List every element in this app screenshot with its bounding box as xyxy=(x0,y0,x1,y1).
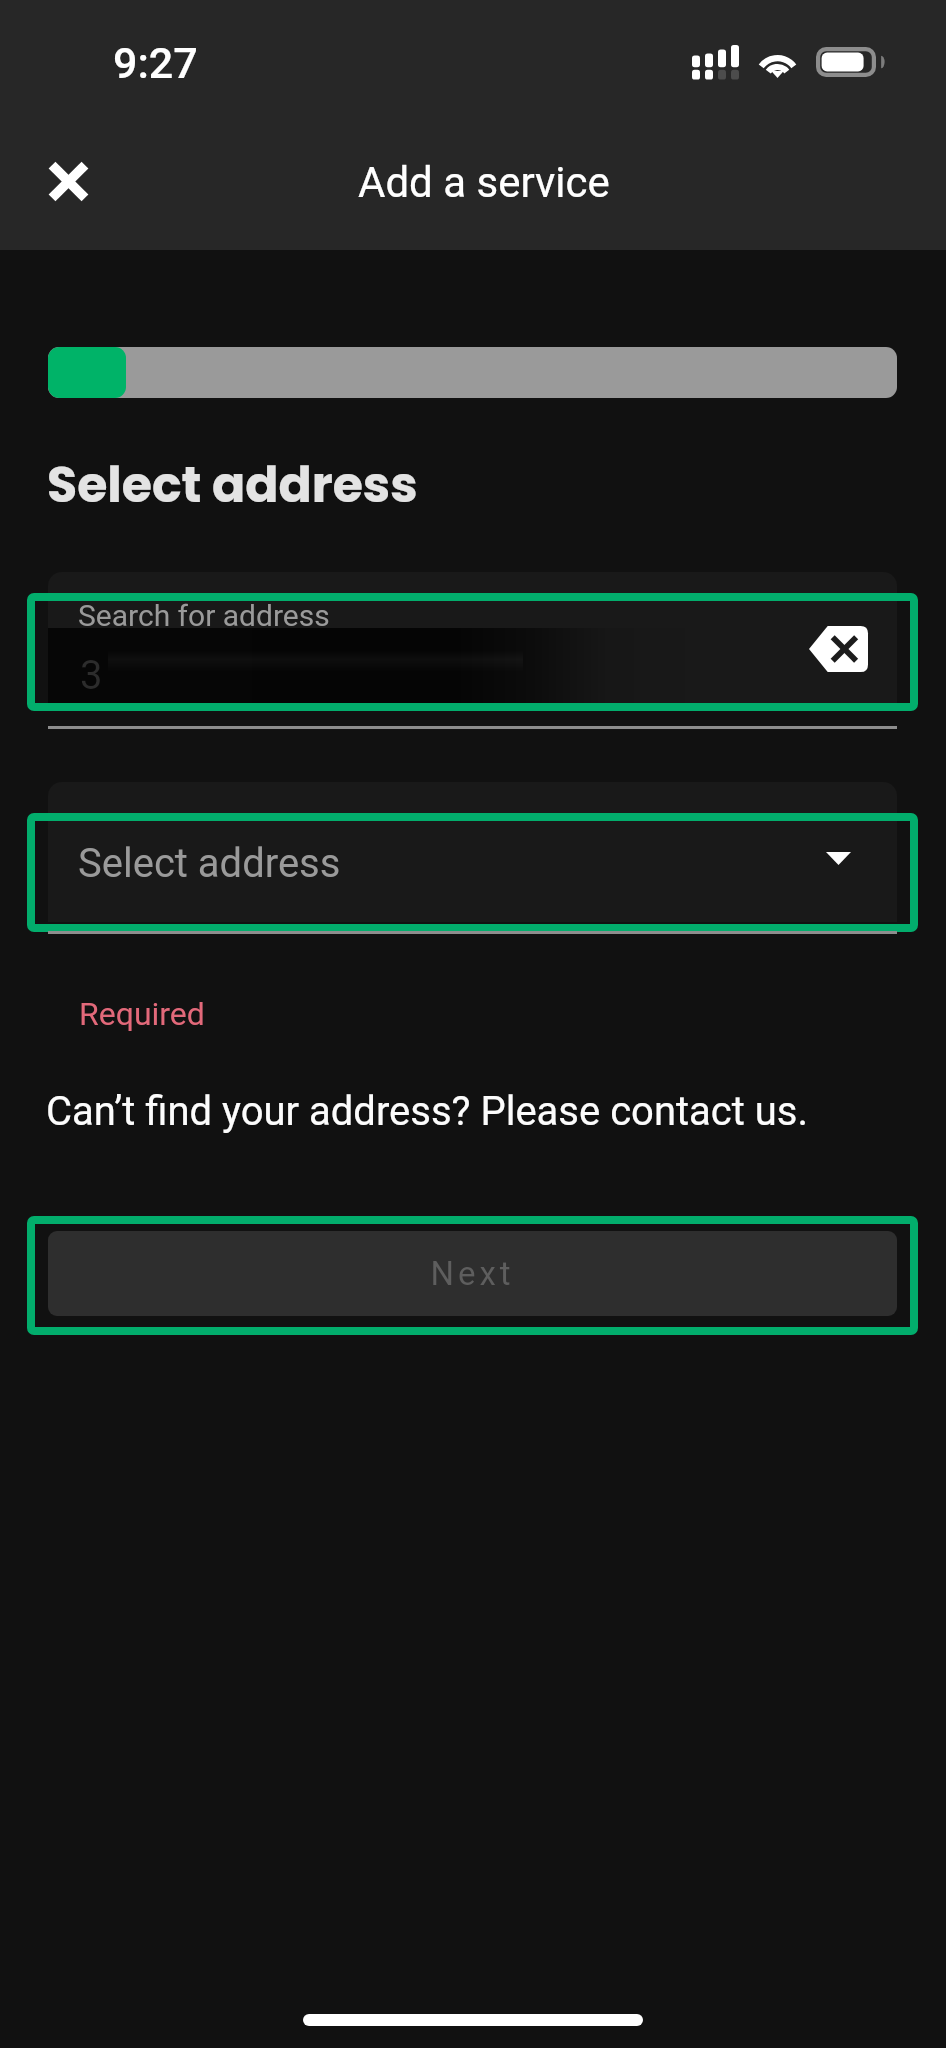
staticText: Next xyxy=(430,1254,515,1293)
staticText: Add a service xyxy=(358,158,610,207)
staticText: 3 xyxy=(80,652,103,699)
staticText: Required xyxy=(79,995,205,1033)
button[interactable]: Next xyxy=(48,1231,897,1316)
button[interactable]: Clear text xyxy=(809,626,868,672)
staticText: 9:27 xyxy=(113,38,198,88)
staticText: Select address xyxy=(47,451,418,520)
button[interactable]: Close xyxy=(28,141,108,221)
staticText: Select address xyxy=(78,840,341,887)
button[interactable]: Can’t find your address? Please contact … xyxy=(46,1088,809,1135)
staticText: Search for address xyxy=(78,598,330,633)
